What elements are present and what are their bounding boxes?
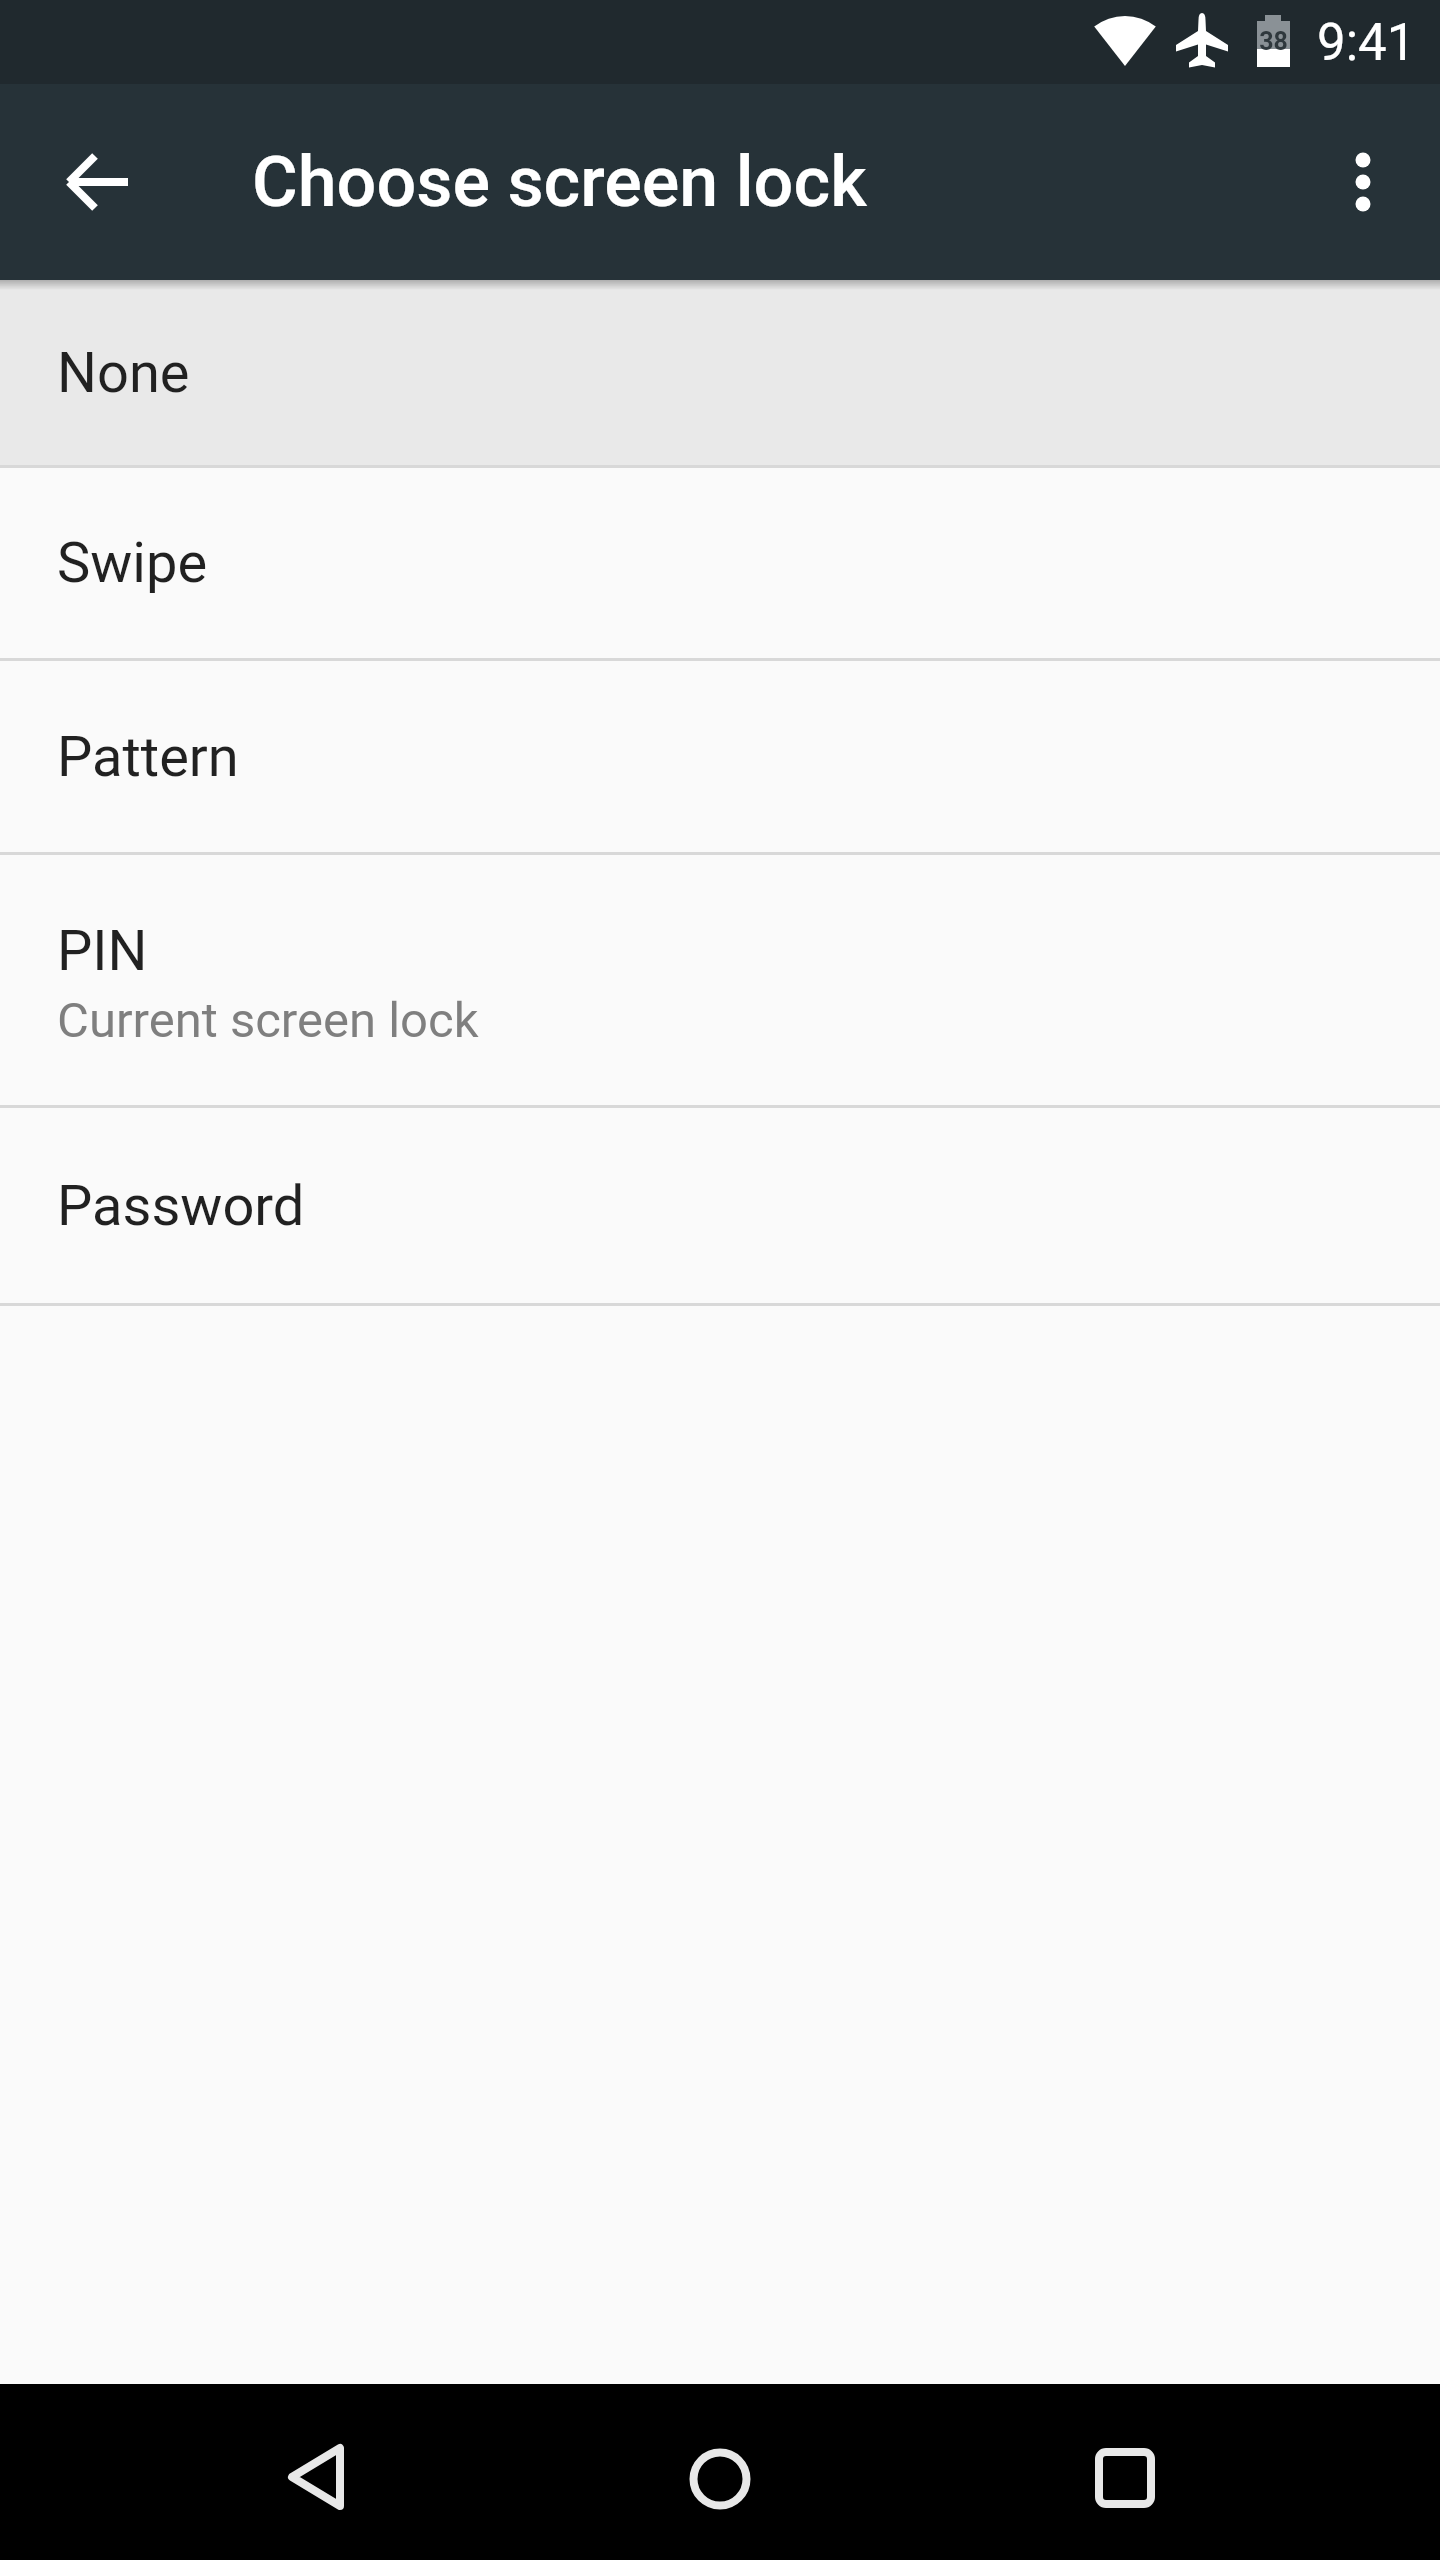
staticText: None: [57, 340, 190, 406]
button[interactable]: Password: [0, 1108, 1440, 1303]
button[interactable]: None: [0, 280, 1440, 465]
staticText: Current screen lock: [57, 992, 479, 1049]
staticText: 9:41: [1317, 13, 1416, 73]
staticText: Choose screen lock: [252, 141, 867, 223]
staticText: Pattern: [57, 724, 239, 790]
staticText: Password: [57, 1173, 305, 1239]
button[interactable]: [1328, 122, 1398, 242]
button[interactable]: PIN: [0, 855, 1440, 1105]
button[interactable]: Pattern: [0, 661, 1440, 852]
staticText: 38: [1257, 27, 1290, 56]
staticText: Swipe: [57, 530, 208, 596]
button[interactable]: [58, 142, 138, 222]
button[interactable]: Swipe: [0, 468, 1440, 658]
button[interactable]: [266, 2430, 376, 2540]
button[interactable]: [665, 2430, 775, 2540]
staticText: PIN: [57, 918, 148, 984]
button[interactable]: [1070, 2430, 1180, 2540]
